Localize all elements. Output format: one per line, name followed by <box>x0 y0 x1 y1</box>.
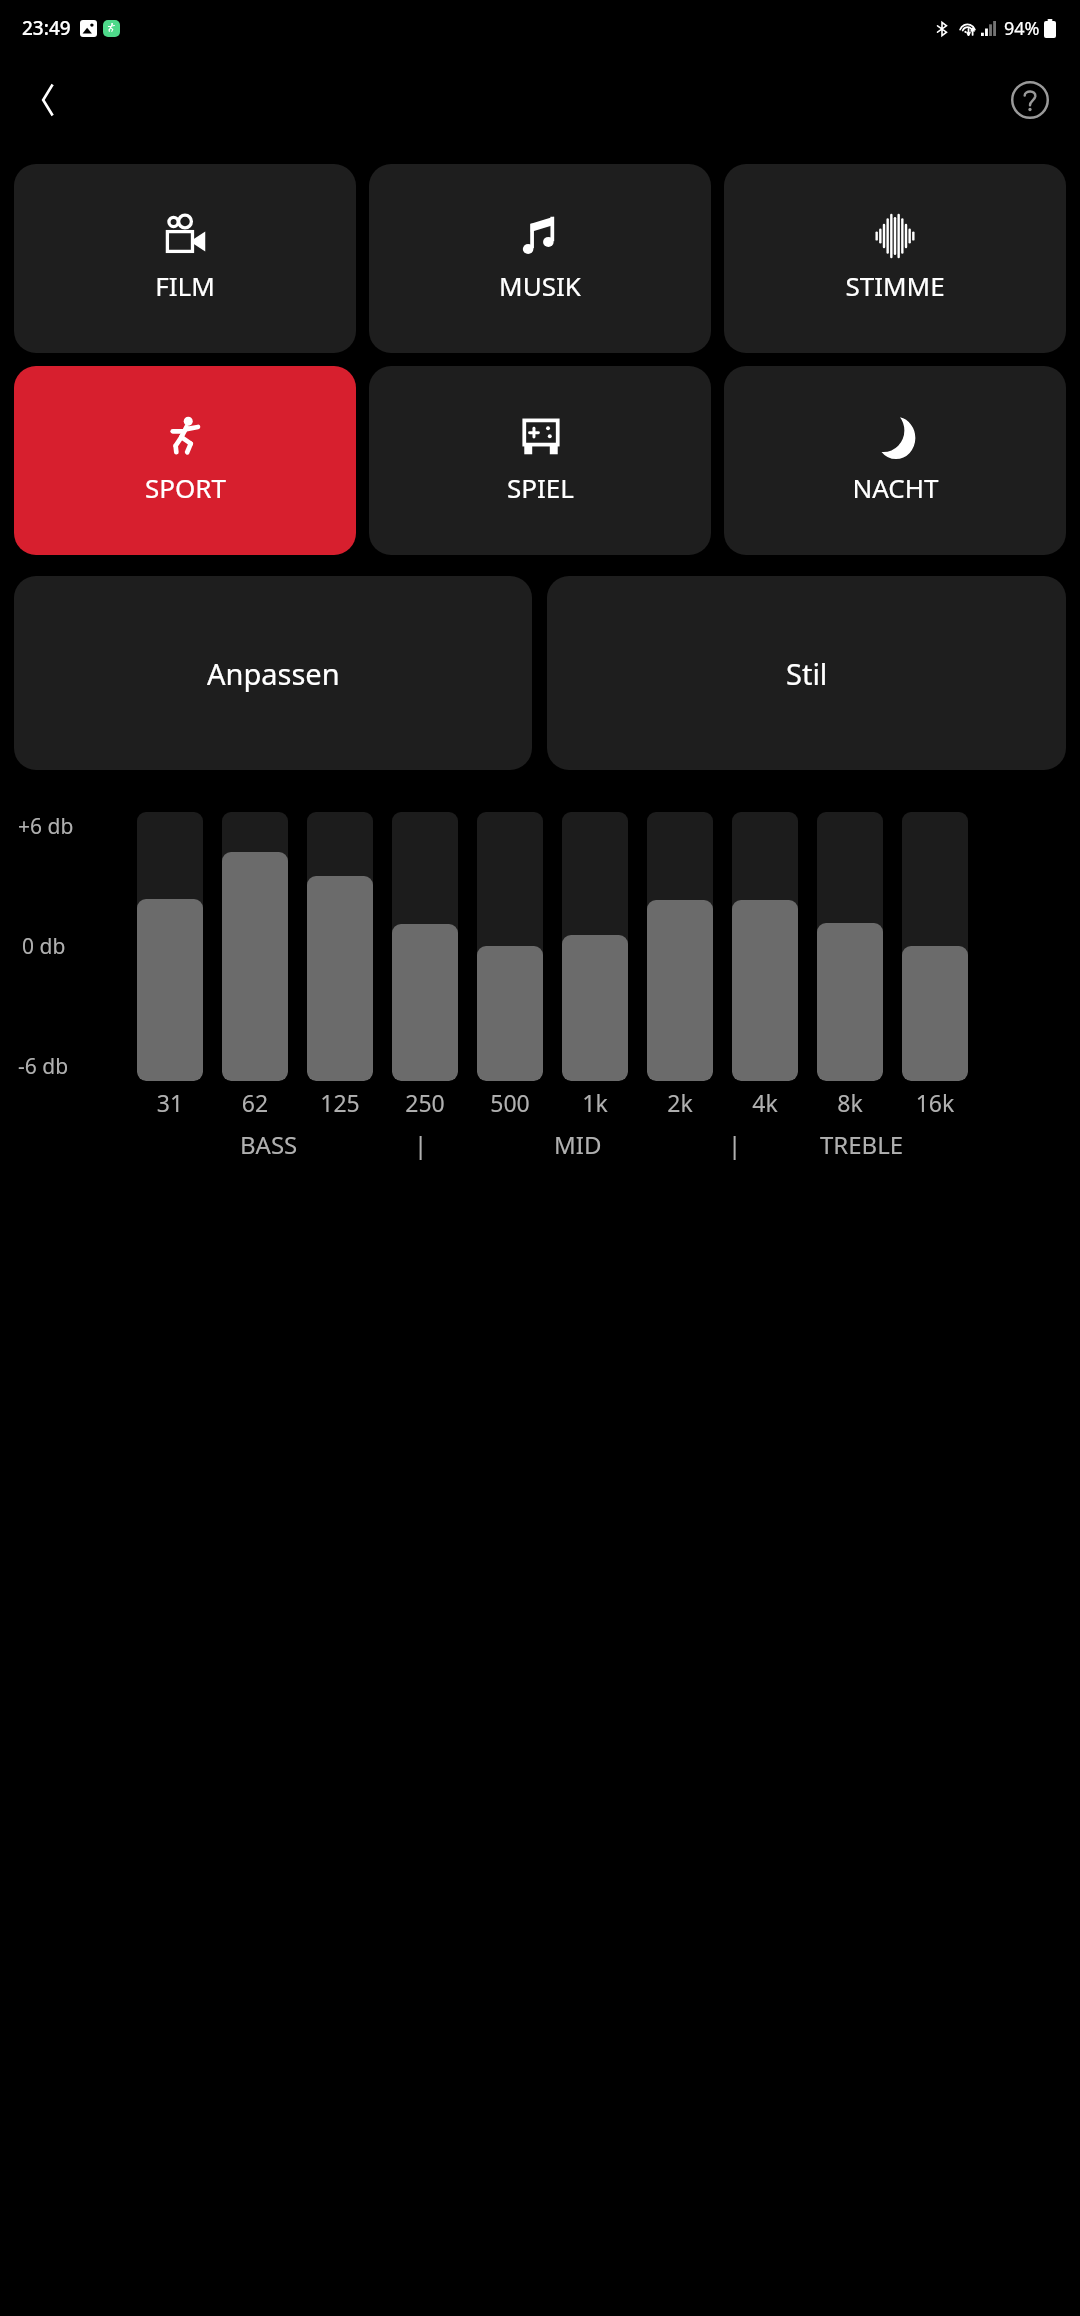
staticText: | <box>414 1128 428 1161</box>
staticText: Anpassen <box>207 654 340 693</box>
staticText: 1k <box>562 1087 628 1118</box>
button[interactable] <box>477 812 543 1081</box>
button[interactable]: MUSIK <box>369 164 711 353</box>
button[interactable]: SPIEL <box>369 366 711 555</box>
staticText: 2k <box>647 1087 713 1118</box>
button[interactable]: FILM <box>14 164 356 353</box>
staticText: 500 <box>477 1087 543 1118</box>
staticText: 16k <box>902 1087 968 1118</box>
staticText: -6 db <box>18 1052 69 1081</box>
button[interactable] <box>902 812 968 1081</box>
staticText: 8k <box>817 1087 883 1118</box>
staticText: 4k <box>732 1087 798 1118</box>
staticText: 250 <box>392 1087 458 1118</box>
button[interactable] <box>222 812 288 1081</box>
staticText: MID <box>554 1128 602 1161</box>
button[interactable]: SPORT <box>14 366 356 555</box>
staticText: 31 <box>137 1087 203 1118</box>
button[interactable]: NACHT <box>724 366 1066 555</box>
staticText: +6 db <box>18 812 74 841</box>
staticText: STIMME <box>845 268 945 303</box>
button[interactable]: Stil <box>547 576 1066 770</box>
staticText: 125 <box>307 1087 373 1118</box>
button[interactable]: STIMME <box>724 164 1066 353</box>
button[interactable] <box>392 812 458 1081</box>
staticText: Stil <box>786 654 828 693</box>
button[interactable]: Help <box>1002 72 1058 128</box>
staticText: FILM <box>155 268 215 303</box>
staticText: | <box>728 1128 742 1161</box>
staticText: SPORT <box>145 470 226 505</box>
staticText: BASS <box>240 1128 298 1161</box>
button[interactable]: Back <box>22 74 74 126</box>
staticText: 0 db <box>22 932 66 961</box>
staticText: 62 <box>222 1087 288 1118</box>
staticText: MUSIK <box>499 268 581 303</box>
button[interactable] <box>562 812 628 1081</box>
button[interactable] <box>817 812 883 1081</box>
button[interactable]: Anpassen <box>14 576 532 770</box>
staticText: 94% <box>1004 16 1040 41</box>
staticText: TREBLE <box>820 1128 904 1161</box>
button[interactable] <box>307 812 373 1081</box>
button[interactable] <box>647 812 713 1081</box>
staticText: SPIEL <box>507 470 574 505</box>
button[interactable] <box>137 812 203 1081</box>
button[interactable] <box>732 812 798 1081</box>
staticText: NACHT <box>852 470 939 505</box>
staticText: 23:49 <box>22 15 71 41</box>
